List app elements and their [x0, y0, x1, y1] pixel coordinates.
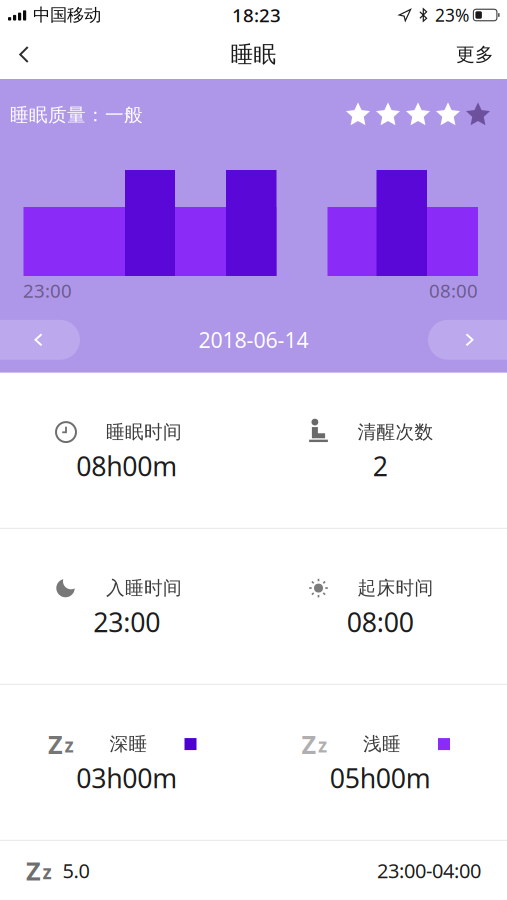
staticText: Z: [26, 854, 41, 887]
staticText: 2018-06-14: [198, 326, 308, 354]
button[interactable]: 返回: [0, 32, 48, 76]
staticText: Z: [301, 727, 316, 761]
staticText: 浅睡: [363, 733, 401, 755]
button[interactable]: 更多: [443, 32, 507, 76]
staticText: 23:00-04:00: [377, 857, 481, 884]
staticText: 中国移动: [33, 4, 101, 26]
staticText: 睡眠: [230, 41, 276, 68]
button[interactable]: 后一天: [428, 320, 507, 360]
staticText: 18:23: [232, 3, 281, 27]
staticText: 08h00m: [76, 448, 177, 483]
staticText: 23:00: [93, 604, 160, 639]
staticText: Z: [48, 727, 63, 761]
button[interactable]: 前一天: [0, 320, 80, 360]
staticText: z: [42, 859, 51, 884]
staticText: 清醒次数: [357, 421, 433, 443]
staticText: 睡眠时间: [106, 421, 182, 443]
staticText: z: [318, 733, 327, 758]
staticText: 08:00: [347, 604, 414, 639]
staticText: 更多: [456, 43, 494, 66]
staticText: 23:00: [23, 278, 72, 303]
staticText: 08:00: [429, 278, 478, 303]
staticText: 起床时间: [357, 577, 433, 599]
button[interactable]: Z: [0, 841, 507, 900]
staticText: 深睡: [109, 733, 147, 755]
staticText: 03h00m: [76, 760, 177, 795]
staticText: 2: [373, 448, 388, 483]
staticText: 入睡时间: [106, 577, 182, 599]
staticText: 23%: [435, 3, 469, 26]
staticText: 05h00m: [330, 760, 431, 795]
staticText: 睡眠质量：一般: [10, 103, 143, 126]
staticText: z: [64, 733, 73, 758]
staticText: 5.0: [62, 857, 89, 884]
